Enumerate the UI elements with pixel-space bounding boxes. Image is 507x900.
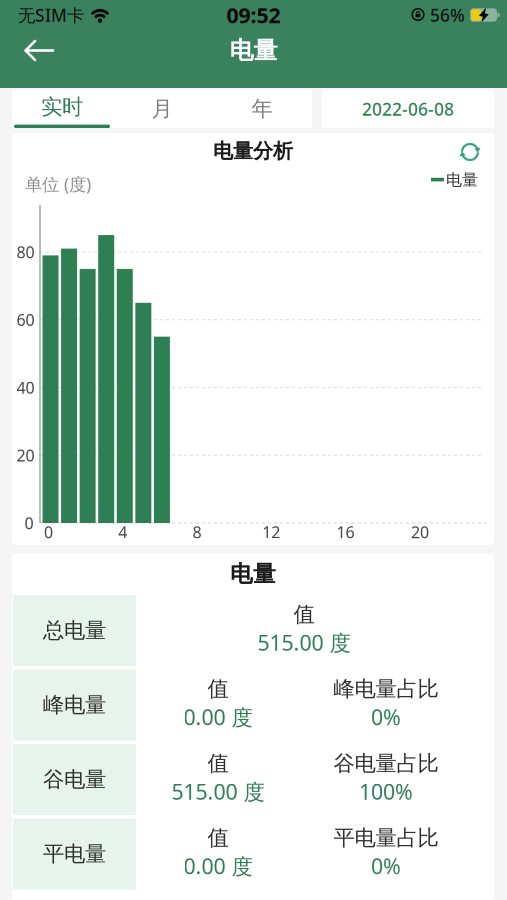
staticText: 值 — [207, 825, 228, 851]
staticText: 总电量 — [43, 617, 106, 644]
staticText: 月 — [151, 96, 172, 122]
staticText: 515.00 度 — [171, 777, 264, 806]
staticText: 0.00 度 — [183, 852, 252, 880]
button[interactable]: 2022-06-08 — [322, 90, 494, 128]
staticText: 40 — [16, 377, 34, 398]
staticText: 电量 — [229, 36, 277, 65]
staticText: 0 — [44, 521, 53, 543]
staticText: 56% — [430, 3, 465, 26]
staticText: 无SIM卡 — [18, 3, 84, 26]
staticText: 515.00 度 — [257, 628, 350, 657]
staticText: 60 — [16, 309, 34, 330]
staticText: 峰电量占比 — [333, 676, 438, 702]
staticText: 电量 — [446, 170, 478, 190]
staticText: 12 — [262, 521, 280, 543]
staticText: 0.00 度 — [183, 703, 252, 731]
button[interactable]: 年 — [212, 90, 312, 128]
staticText: 8 — [193, 521, 202, 543]
staticText: 0% — [371, 852, 401, 880]
button[interactable] — [0, 34, 55, 67]
staticText: 实时 — [41, 94, 83, 120]
button[interactable] — [457, 139, 483, 165]
staticText: 80 — [16, 241, 34, 263]
staticText: 谷电量 — [43, 766, 106, 793]
staticText: 4 — [118, 521, 127, 543]
staticText: 年 — [251, 96, 272, 122]
staticText: 峰电量 — [43, 692, 106, 718]
staticText: 值 — [293, 601, 314, 628]
staticText: 20 — [411, 521, 429, 543]
staticText: 16 — [337, 521, 355, 543]
staticText: 电量分析 — [213, 139, 293, 163]
staticText: 0% — [371, 703, 401, 731]
staticText: 值 — [207, 750, 228, 777]
staticText: 平电量 — [43, 841, 106, 867]
staticText: 2022-06-08 — [362, 97, 454, 120]
staticText: 单位 (度) — [25, 172, 91, 195]
staticText: 100% — [359, 777, 413, 806]
staticText: 电量 — [230, 560, 276, 588]
button[interactable]: 月 — [112, 90, 212, 128]
staticText: 09:52 — [226, 1, 280, 29]
staticText: 谷电量占比 — [333, 750, 438, 777]
staticText: 值 — [207, 676, 228, 702]
staticText: 平电量占比 — [333, 825, 438, 851]
staticText: 20 — [16, 445, 34, 466]
button[interactable]: 实时 — [12, 90, 112, 128]
staticText: 0 — [24, 512, 33, 534]
